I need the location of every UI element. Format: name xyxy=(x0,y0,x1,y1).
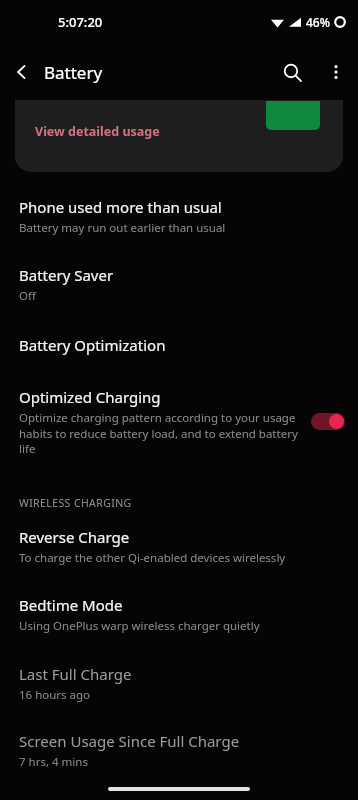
staticText: 16 hours ago xyxy=(19,687,91,703)
button[interactable]: Optimized Charging toggle xyxy=(311,413,345,430)
staticText: Optimize charging pattern according to y… xyxy=(19,410,303,456)
button[interactable]: Optimized Charging xyxy=(0,387,358,456)
button[interactable]: Screen Usage Since Full Charge xyxy=(0,731,358,770)
staticText: Off xyxy=(19,288,36,304)
staticText: Phone used more than usual xyxy=(19,197,222,217)
button[interactable]: More options xyxy=(314,50,358,94)
button[interactable]: View detailed usage xyxy=(15,100,343,172)
staticText: Battery Saver xyxy=(19,265,114,285)
staticText: Using OnePlus warp wireless charger quie… xyxy=(19,618,260,634)
staticText: 46% xyxy=(306,14,330,30)
button[interactable]: Battery Optimization xyxy=(0,335,358,355)
staticText: To charge the other Qi-enabled devices w… xyxy=(19,550,286,566)
button[interactable]: Back xyxy=(0,50,44,94)
staticText: 7 hrs, 4 mins xyxy=(19,754,88,770)
staticText: WIRELESS CHARGING xyxy=(19,496,132,510)
staticText: Last Full Charge xyxy=(19,664,132,684)
staticText: Reverse Charge xyxy=(19,527,130,547)
button[interactable]: Reverse Charge xyxy=(0,527,358,566)
staticText: View detailed usage xyxy=(35,123,160,140)
button[interactable]: Bedtime Mode xyxy=(0,595,358,634)
staticText: Optimized Charging xyxy=(19,387,161,407)
staticText: Battery may run out earlier than usual xyxy=(19,220,226,236)
button[interactable]: Battery Saver xyxy=(0,265,358,304)
button[interactable]: Search xyxy=(270,50,314,94)
staticText: Bedtime Mode xyxy=(19,595,123,615)
staticText: Screen Usage Since Full Charge xyxy=(19,731,240,751)
button[interactable]: Last Full Charge xyxy=(0,664,358,703)
staticText: 5:07:20 xyxy=(58,13,103,31)
staticText: Battery Optimization xyxy=(19,335,166,355)
button[interactable]: Phone used more than usual xyxy=(0,197,358,236)
staticText: Battery xyxy=(44,61,103,84)
